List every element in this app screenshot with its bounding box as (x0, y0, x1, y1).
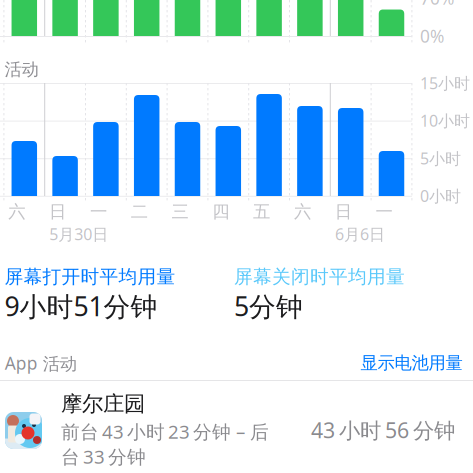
staticText: 三 (171, 201, 188, 222)
button[interactable]: 摩尔庄园 (0, 381, 473, 473)
staticText: 五 (253, 201, 270, 222)
staticText: 前台 43 小时 23 分钟 – 后 台 33 分钟 (61, 419, 269, 469)
staticText: 显示电池用量 (360, 352, 462, 374)
staticText: 一 (90, 201, 107, 222)
staticText: 屏幕打开时平均用量 (4, 265, 175, 288)
staticText: 5小时 (420, 148, 461, 169)
staticText: 六 (294, 201, 311, 222)
staticText: 六 (8, 201, 25, 222)
staticText: 0% (420, 24, 444, 47)
staticText: 43 小时 56 分钟 (311, 416, 455, 444)
staticText: 15小时 (420, 72, 470, 94)
staticText: 10小时 (420, 110, 470, 131)
staticText: 四 (212, 201, 229, 222)
staticText: 0小时 (420, 185, 461, 206)
staticText: 5月30日 (49, 223, 108, 245)
staticText: App 活动 (5, 351, 77, 374)
staticText: 6月6日 (335, 223, 385, 245)
staticText: 日 (49, 201, 66, 222)
staticText: 日 (335, 201, 352, 222)
staticText: 活动 (4, 59, 38, 80)
staticText: 70% (420, 0, 454, 9)
staticText: 9小时51分钟 (4, 288, 157, 324)
staticText: 摩尔庄园 (61, 391, 145, 417)
staticText: 一 (375, 201, 392, 222)
staticText: 屏幕关闭时平均用量 (234, 265, 405, 288)
button[interactable]: 显示电池用量 (312, 348, 462, 378)
staticText: 二 (131, 201, 148, 222)
staticText: 5分钟 (234, 288, 303, 324)
